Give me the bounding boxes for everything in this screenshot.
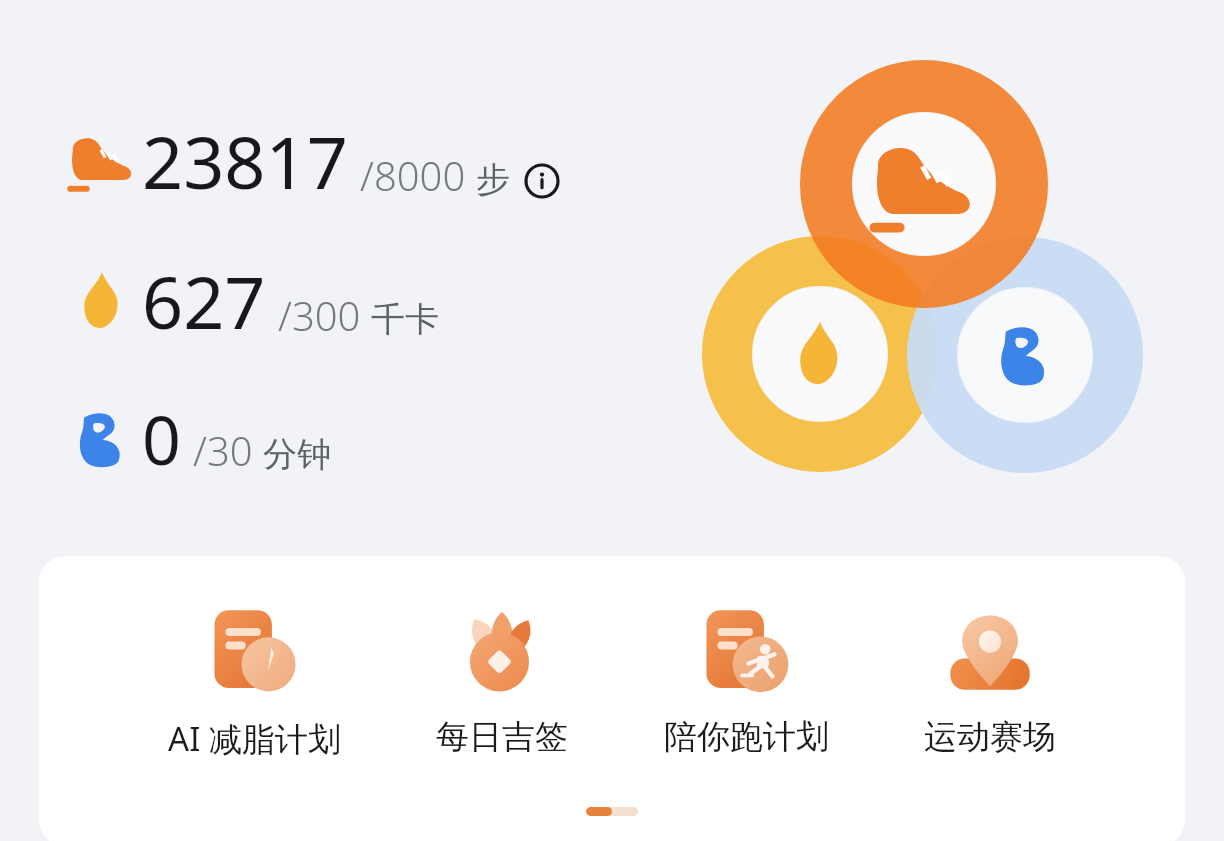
button[interactable]: 每日吉签 — [436, 602, 568, 758]
button[interactable]: Activity rings — [690, 35, 1180, 505]
staticText: 627 — [142, 252, 266, 350]
staticText: 陪你跑计划 — [664, 716, 829, 758]
button[interactable] — [586, 807, 638, 816]
staticText: 每日吉签 — [436, 716, 568, 758]
staticText: AI 减脂计划 — [168, 716, 341, 761]
staticText: /8000 — [360, 148, 466, 202]
staticText: /300 — [278, 288, 361, 342]
button[interactable]: 运动赛场 — [924, 602, 1056, 758]
staticText: 23817 — [142, 112, 348, 210]
button[interactable]: AI 减脂计划 — [168, 602, 341, 761]
button[interactable]: Info — [524, 163, 560, 199]
staticText: 千卡 — [371, 298, 439, 341]
staticText: 步 — [476, 158, 510, 201]
staticText: /30 — [193, 423, 253, 477]
button[interactable]: 陪你跑计划 — [664, 602, 829, 758]
staticText: 分钟 — [263, 433, 331, 476]
staticText: 0 — [142, 392, 181, 485]
staticText: 运动赛场 — [924, 716, 1056, 758]
